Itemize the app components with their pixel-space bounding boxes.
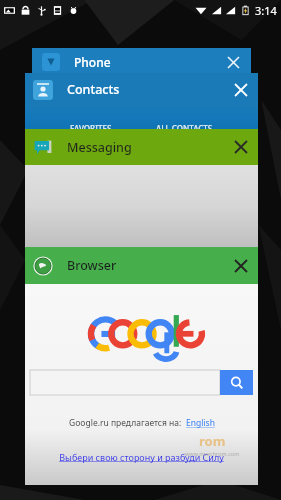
button[interactable]: Messaging: [25, 129, 258, 247]
staticText: Phone: [74, 54, 111, 70]
button[interactable]: Search: [220, 370, 253, 395]
button[interactable]: Close Contacts: [230, 79, 252, 101]
button[interactable]: Search: [30, 370, 253, 395]
button[interactable]: Browser: [25, 247, 258, 485]
staticText: www.nwechrom.com: [185, 450, 240, 457]
button[interactable]: Close Browser: [230, 255, 252, 277]
staticText: Contacts: [67, 81, 120, 98]
staticText: FAVORITES: [70, 123, 112, 134]
button[interactable]: Close Messaging: [230, 136, 252, 158]
staticText: ALL CONTACTS: [156, 123, 213, 134]
button[interactable]: Выбери свою сторону и разбуди Силу: [25, 451, 258, 463]
staticText: Messaging: [67, 139, 132, 156]
button[interactable]: Contacts: [25, 73, 258, 135]
staticText: Browser: [67, 257, 117, 274]
button[interactable]: Phone: [32, 48, 251, 88]
button[interactable]: English: [186, 417, 215, 429]
button[interactable]: Close Phone: [223, 52, 243, 72]
staticText: rom: [199, 432, 226, 450]
staticText: 3:14: [255, 3, 277, 18]
staticText: Google.ru предлагается на:: [69, 417, 186, 429]
